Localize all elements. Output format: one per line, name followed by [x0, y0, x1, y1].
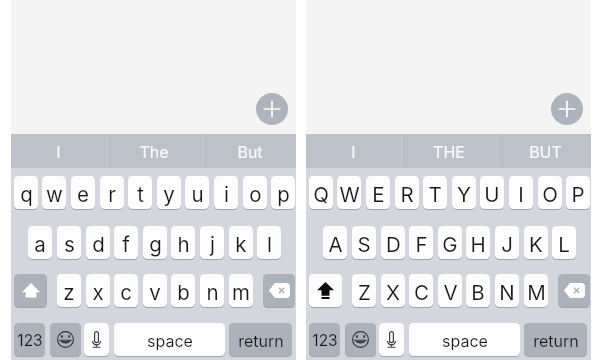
button[interactable]: space: [409, 323, 520, 356]
button[interactable]: g: [143, 226, 167, 259]
button[interactable]: h: [171, 226, 195, 259]
button[interactable]: BUT: [498, 134, 592, 168]
button[interactable]: The: [106, 134, 202, 168]
staticText: Z: [358, 280, 371, 305]
staticText: space: [442, 331, 488, 350]
button[interactable]: F: [409, 226, 433, 259]
button[interactable]: R: [395, 176, 419, 209]
button[interactable]: e: [71, 176, 95, 209]
button[interactable]: Z: [352, 274, 376, 307]
button[interactable]: d: [86, 226, 110, 259]
button[interactable]: f: [114, 226, 138, 259]
staticText: G: [442, 232, 458, 257]
button[interactable]: n: [200, 274, 224, 307]
button[interactable]: return: [524, 323, 587, 356]
button[interactable]: z: [57, 274, 81, 307]
button[interactable]: M: [524, 274, 548, 307]
staticText: O: [542, 182, 558, 207]
button[interactable]: Backspace: [263, 274, 295, 307]
button[interactable]: u: [185, 176, 209, 209]
button[interactable]: Dictation: [84, 323, 109, 356]
staticText: Q: [313, 182, 329, 207]
button[interactable]: m: [229, 274, 253, 307]
button[interactable]: k: [229, 226, 253, 259]
button[interactable]: Add: [551, 93, 583, 125]
button[interactable]: s: [57, 226, 81, 259]
button[interactable]: K: [524, 226, 548, 259]
button[interactable]: Numbers: [14, 323, 45, 356]
button[interactable]: V: [438, 274, 462, 307]
button[interactable]: a: [28, 226, 52, 259]
button[interactable]: T: [423, 176, 447, 209]
button[interactable]: E: [366, 176, 390, 209]
staticText: I: [56, 142, 61, 161]
button[interactable]: O: [538, 176, 562, 209]
button[interactable]: t: [128, 176, 152, 209]
staticText: I: [351, 142, 356, 161]
button[interactable]: A: [323, 226, 347, 259]
staticText: 123: [17, 331, 43, 350]
staticText: 123: [312, 331, 338, 350]
button[interactable]: B: [466, 274, 490, 307]
button[interactable]: Dictation: [379, 323, 404, 356]
button[interactable]: y: [157, 176, 181, 209]
staticText: f: [122, 232, 130, 257]
button[interactable]: THE: [401, 134, 497, 168]
button[interactable]: b: [171, 274, 195, 307]
staticText: I: [518, 182, 524, 207]
staticText: S: [357, 232, 371, 257]
button[interactable]: H: [466, 226, 490, 259]
button[interactable]: P: [566, 176, 590, 209]
button[interactable]: Backspace: [558, 274, 590, 307]
button[interactable]: J: [495, 226, 519, 259]
button[interactable]: C: [409, 274, 433, 307]
button[interactable]: G: [438, 226, 462, 259]
button[interactable]: Y: [452, 176, 476, 209]
button[interactable]: N: [495, 274, 519, 307]
button[interactable]: L: [552, 226, 576, 259]
button[interactable]: Q: [309, 176, 333, 209]
button[interactable]: return: [229, 323, 292, 356]
button[interactable]: But: [203, 134, 297, 168]
button[interactable]: I: [306, 134, 401, 168]
staticText: j: [210, 232, 215, 257]
button[interactable]: Add: [256, 93, 288, 125]
button[interactable]: q: [14, 176, 38, 209]
staticText: A: [328, 232, 343, 257]
staticText: r: [108, 182, 116, 207]
staticText: u: [191, 182, 204, 207]
button[interactable]: Shift: [14, 274, 47, 307]
button[interactable]: Emoji: [345, 323, 376, 356]
staticText: C: [414, 280, 429, 305]
staticText: J: [501, 232, 513, 257]
button[interactable]: o: [243, 176, 267, 209]
staticText: z: [63, 280, 75, 305]
button[interactable]: D: [381, 226, 405, 259]
staticText: e: [77, 182, 89, 207]
button[interactable]: X: [381, 274, 405, 307]
staticText: But: [237, 142, 263, 161]
button[interactable]: Emoji: [50, 323, 81, 356]
button[interactable]: i: [214, 176, 238, 209]
button[interactable]: w: [42, 176, 66, 209]
button[interactable]: v: [143, 274, 167, 307]
button[interactable]: Numbers: [309, 323, 340, 356]
button[interactable]: I: [509, 176, 533, 209]
button[interactable]: space: [114, 323, 225, 356]
button[interactable]: j: [200, 226, 224, 259]
staticText: K: [529, 232, 543, 257]
button[interactable]: x: [86, 274, 110, 307]
staticText: The: [139, 142, 169, 161]
button[interactable]: r: [100, 176, 124, 209]
button[interactable]: U: [480, 176, 504, 209]
button[interactable]: S: [352, 226, 376, 259]
button[interactable]: I: [11, 134, 106, 168]
button[interactable]: W: [337, 176, 361, 209]
button[interactable]: l: [257, 226, 281, 259]
staticText: X: [386, 280, 400, 305]
staticText: p: [277, 182, 290, 207]
button[interactable]: p: [271, 176, 295, 209]
button[interactable]: c: [114, 274, 138, 307]
button[interactable]: Shift: [309, 274, 342, 307]
staticText: return: [238, 331, 284, 350]
